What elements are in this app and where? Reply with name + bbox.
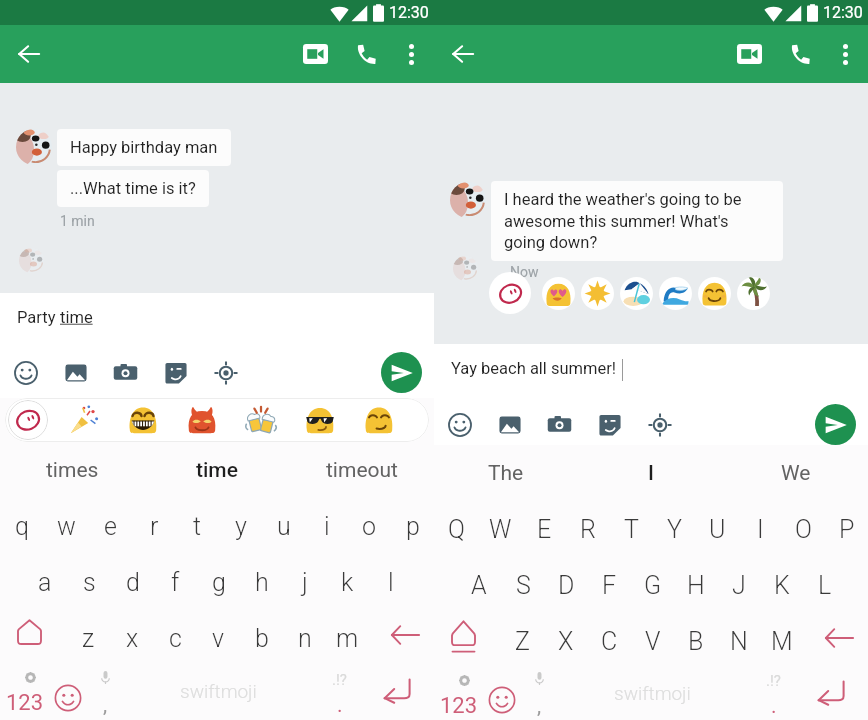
button[interactable]: m (326, 610, 369, 666)
button[interactable]: B (674, 613, 717, 669)
button[interactable]: n (283, 610, 326, 666)
button[interactable]: K (760, 557, 803, 613)
button[interactable]: O (782, 501, 825, 557)
button[interactable]: E (522, 501, 566, 557)
button[interactable]: Reaction 2 (581, 277, 614, 310)
button[interactable]: Reaction 5 (698, 277, 731, 310)
button[interactable]: Emoji keyboard (53, 666, 82, 720)
button[interactable]: More options (824, 33, 866, 75)
button[interactable]: N (717, 613, 760, 669)
button[interactable]: Period (741, 669, 805, 720)
button[interactable]: I (578, 445, 723, 501)
button[interactable]: p (391, 498, 434, 554)
button[interactable]: Emoji 6 (349, 398, 408, 442)
button[interactable]: I (739, 501, 782, 557)
button[interactable]: Send (381, 352, 422, 393)
button[interactable]: Z (500, 613, 544, 669)
button[interactable]: c (154, 610, 197, 666)
button[interactable]: Shift (0, 610, 66, 666)
button[interactable]: Backspace (369, 610, 434, 666)
button[interactable]: Emoji (9, 356, 42, 389)
button[interactable]: Enter (805, 669, 856, 720)
button[interactable]: h (240, 554, 283, 610)
button[interactable]: J (717, 557, 760, 613)
button[interactable]: Emoji 1 (54, 398, 113, 442)
button[interactable]: Stickers (593, 408, 626, 441)
button[interactable]: Happy birthday man (57, 129, 231, 166)
button[interactable]: G (631, 557, 674, 613)
button[interactable]: Backspace (803, 613, 868, 669)
button[interactable]: Gallery (59, 356, 92, 389)
button[interactable]: Comma (516, 669, 563, 720)
button[interactable]: S (501, 557, 545, 613)
button[interactable]: D (545, 557, 588, 613)
button[interactable]: Swiftmoji suggestion (489, 272, 531, 314)
button[interactable]: I heard the weather's going to be awesom… (491, 181, 783, 261)
button[interactable]: g (197, 554, 240, 610)
button[interactable]: Back (9, 34, 49, 74)
button[interactable]: x (110, 610, 154, 666)
button[interactable]: H (674, 557, 717, 613)
button[interactable]: We (723, 445, 868, 501)
button[interactable]: y (219, 498, 262, 554)
button[interactable]: l (369, 554, 412, 610)
button[interactable]: R (566, 501, 610, 557)
button[interactable]: timeout (289, 442, 434, 498)
button[interactable]: r (132, 498, 176, 554)
button[interactable]: Q (434, 501, 478, 557)
button[interactable]: More options (390, 33, 432, 75)
button[interactable]: a (23, 554, 67, 610)
button[interactable]: k (326, 554, 369, 610)
button[interactable]: b (240, 610, 283, 666)
button[interactable]: Camera (543, 408, 576, 441)
button[interactable]: e (88, 498, 132, 554)
button[interactable]: Video call (726, 31, 772, 77)
button[interactable]: t (176, 498, 219, 554)
button[interactable]: Numbers (0, 666, 53, 720)
button[interactable]: Emoji (443, 408, 476, 441)
button[interactable]: Swiftmoji (5, 398, 50, 442)
button[interactable]: Location (643, 408, 676, 441)
button[interactable]: F (588, 557, 631, 613)
button[interactable]: Send (815, 404, 856, 445)
button[interactable]: u (262, 498, 305, 554)
button[interactable]: ...What time is it? (57, 170, 209, 207)
button[interactable]: Stickers (159, 356, 192, 389)
button[interactable]: Reaction 4 (659, 277, 692, 310)
button[interactable]: s (67, 554, 111, 610)
button[interactable]: d (111, 554, 154, 610)
button[interactable]: Video call (292, 31, 338, 77)
button[interactable]: L (803, 557, 846, 613)
button[interactable]: Enter (371, 666, 422, 720)
button[interactable]: Camera (109, 356, 142, 389)
button[interactable]: Location (209, 356, 242, 389)
button[interactable]: Emoji 4 (231, 398, 290, 442)
button[interactable]: time (144, 442, 289, 498)
button[interactable]: Shift (434, 613, 500, 669)
button[interactable]: P (825, 501, 868, 557)
button[interactable]: V (631, 613, 674, 669)
button[interactable]: Call (343, 31, 389, 77)
button[interactable]: Call (777, 31, 823, 77)
button[interactable]: Period (307, 666, 371, 720)
button[interactable]: v (197, 610, 240, 666)
button[interactable]: C (588, 613, 631, 669)
button[interactable]: W (478, 501, 522, 557)
button[interactable]: i (305, 498, 348, 554)
button[interactable]: q (0, 498, 44, 554)
button[interactable]: Back (443, 34, 483, 74)
button[interactable]: Emoji keyboard (487, 669, 516, 720)
button[interactable]: j (283, 554, 326, 610)
button[interactable]: Gallery (493, 408, 526, 441)
button[interactable]: o (348, 498, 391, 554)
button[interactable]: M (760, 613, 803, 669)
button[interactable]: Numbers (434, 669, 487, 720)
button[interactable]: z (66, 610, 110, 666)
button[interactable]: w (44, 498, 88, 554)
button[interactable]: Emoji 5 (290, 398, 349, 442)
button[interactable]: Space (563, 669, 741, 720)
button[interactable]: Comma (82, 666, 129, 720)
button[interactable]: U (696, 501, 739, 557)
button[interactable]: f (154, 554, 197, 610)
button[interactable]: Reaction 3 (620, 277, 653, 310)
